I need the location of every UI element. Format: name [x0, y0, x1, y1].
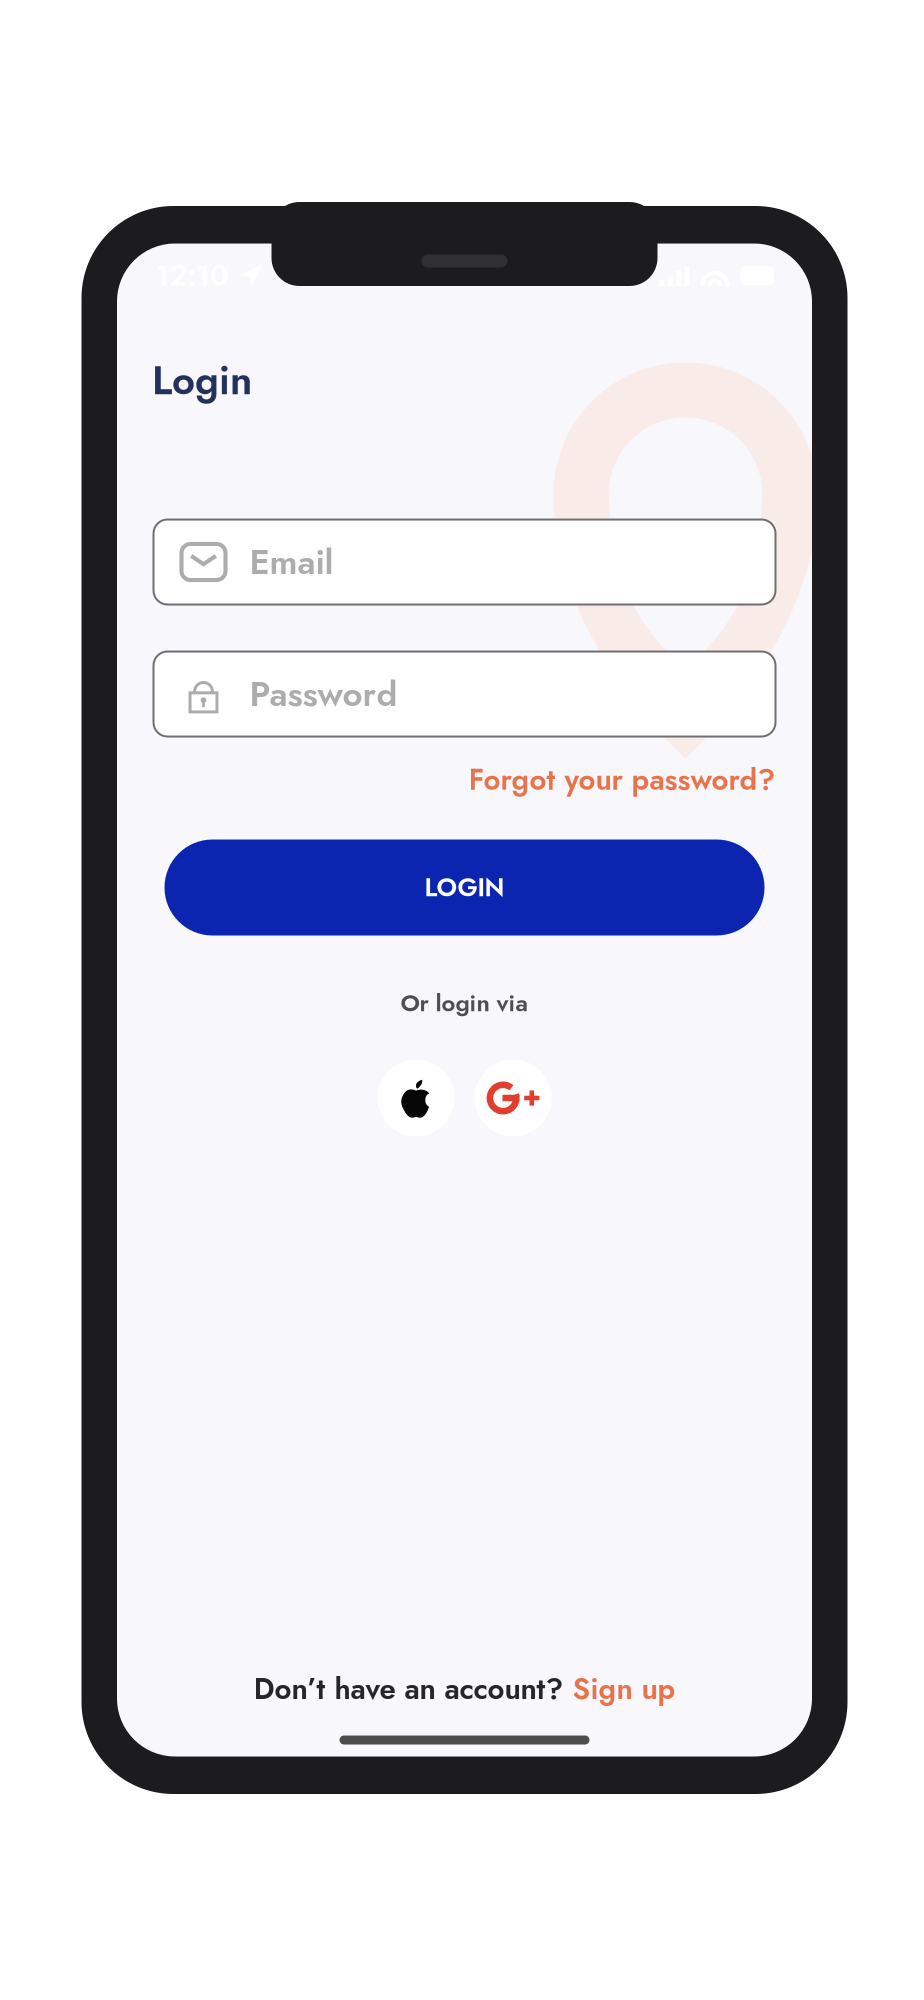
staticText: Login: [152, 351, 252, 409]
button[interactable]: Password: [153, 651, 775, 736]
staticText: Sign up: [572, 1667, 675, 1710]
staticText: LOGIN: [424, 869, 504, 906]
button[interactable]: Email: [153, 519, 775, 604]
staticText: Email: [249, 537, 333, 587]
staticText: Or login via: [400, 985, 528, 1020]
button[interactable]: Sign in with Google: [474, 1059, 551, 1136]
button[interactable]: Sign up: [572, 1667, 675, 1710]
staticText: Forgot your password?: [468, 758, 775, 801]
button[interactable]: LOGIN: [164, 839, 764, 935]
staticText: Don’t have an account?: [253, 1667, 572, 1710]
button[interactable]: Sign in with Apple: [377, 1059, 454, 1136]
button[interactable]: Forgot your password?: [153, 758, 775, 800]
staticText: Password: [249, 669, 397, 719]
